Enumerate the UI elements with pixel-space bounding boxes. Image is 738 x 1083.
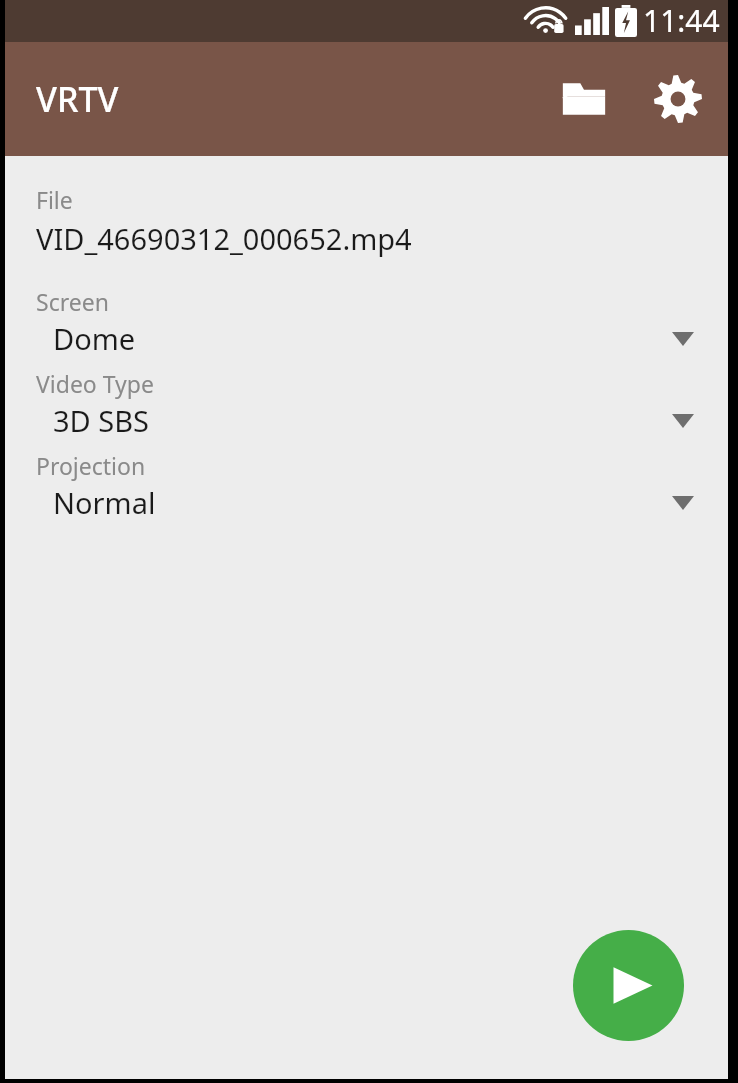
button[interactable]: Dome: [5, 317, 728, 368]
staticText: Video Type: [36, 368, 154, 399]
staticText: Normal: [53, 483, 156, 522]
button[interactable]: Settings: [642, 63, 714, 135]
button[interactable]: 3D SBS: [5, 399, 728, 450]
button[interactable]: Normal: [5, 481, 728, 532]
button[interactable]: VID_46690312_000652.mp4: [5, 219, 728, 258]
staticText: VID_46690312_000652.mp4: [36, 219, 412, 258]
staticText: File: [36, 184, 73, 215]
button[interactable]: Open file: [548, 63, 620, 135]
staticText: Projection: [36, 450, 146, 481]
staticText: Dome: [53, 319, 136, 358]
button[interactable]: Play: [573, 930, 684, 1041]
staticText: Screen: [36, 286, 109, 317]
staticText: 11:44: [643, 0, 720, 40]
staticText: VRTV: [36, 76, 119, 122]
staticText: 3D SBS: [53, 401, 149, 440]
